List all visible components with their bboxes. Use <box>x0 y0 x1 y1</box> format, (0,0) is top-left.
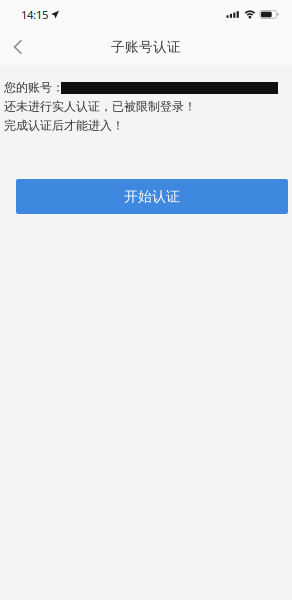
staticText: 14:15 <box>21 7 48 22</box>
button[interactable]: Back <box>0 29 36 65</box>
staticText: 您的账号： <box>4 80 64 95</box>
staticText: 开始认证 <box>124 188 180 205</box>
staticText: 完成认证后才能进入！ <box>4 118 124 133</box>
button[interactable]: 开始认证 <box>16 179 288 214</box>
staticText: 还未进行实人认证，已被限制登录！ <box>4 99 196 114</box>
staticText: 子账号认证 <box>111 38 181 55</box>
